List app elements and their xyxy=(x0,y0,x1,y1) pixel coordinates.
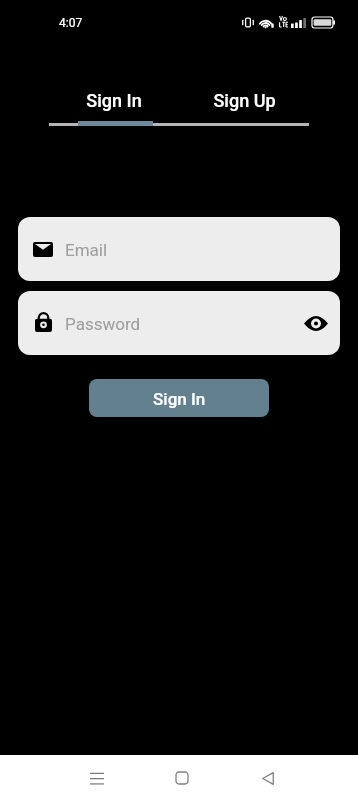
button[interactable]: Email xyxy=(18,217,340,281)
button[interactable]: Toggle password visibility xyxy=(300,307,332,339)
staticText: Sign In xyxy=(153,389,206,409)
button[interactable]: Sign In xyxy=(49,90,179,111)
staticText: 4:07 xyxy=(59,16,83,30)
button[interactable]: Recents xyxy=(75,756,119,800)
button[interactable]: Sign Up xyxy=(179,90,309,111)
button[interactable]: Back xyxy=(246,756,290,800)
staticText: Sign In xyxy=(86,90,142,111)
staticText: Email xyxy=(65,240,108,260)
button[interactable]: Sign In xyxy=(89,379,269,417)
button[interactable]: Password xyxy=(18,291,340,355)
staticText: Password xyxy=(65,314,141,334)
staticText: Sign Up xyxy=(213,90,276,111)
button[interactable]: Home xyxy=(160,756,204,800)
